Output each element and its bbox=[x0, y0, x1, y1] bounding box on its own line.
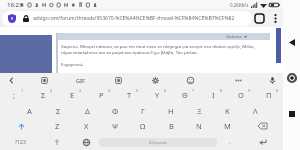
staticText: ?123 bbox=[15, 139, 26, 146]
button[interactable]: Ζ bbox=[43, 118, 72, 134]
button[interactable]: Κ bbox=[213, 103, 241, 118]
staticText: Ξ bbox=[197, 106, 202, 116]
staticText: Τ bbox=[127, 90, 132, 100]
button[interactable]: Ξ bbox=[185, 103, 213, 118]
staticText: Ι bbox=[212, 90, 215, 100]
button[interactable]: More options bbox=[268, 11, 283, 26]
staticText: Π bbox=[266, 90, 272, 100]
button[interactable]: Φ bbox=[101, 103, 129, 118]
button[interactable]: adslgr.com/forum/threads/953670-%CE%A4%C… bbox=[2, 11, 252, 26]
button[interactable]: Ρ bbox=[87, 87, 115, 103]
staticText: 7 bbox=[192, 88, 195, 93]
staticText: Ψ bbox=[112, 121, 119, 131]
staticText: 9 bbox=[248, 88, 251, 93]
button[interactable]: GIF bbox=[66, 73, 94, 87]
button[interactable]: Ε bbox=[58, 87, 87, 103]
staticText: 8 bbox=[220, 88, 223, 93]
button[interactable]: Θ bbox=[171, 87, 199, 103]
button[interactable]: Υ bbox=[143, 87, 171, 103]
button[interactable]: Shift bbox=[0, 118, 43, 134]
staticText: Ε bbox=[70, 90, 75, 100]
staticText: adslgr.com/forum/threads/953670-%CE%A4%C… bbox=[33, 15, 235, 22]
staticText: Options bbox=[226, 34, 242, 40]
staticText: Λ bbox=[253, 106, 258, 116]
staticText: 5 bbox=[136, 88, 139, 93]
button[interactable]: Enter bbox=[243, 134, 283, 150]
button[interactable]: Change language bbox=[73, 134, 99, 150]
button[interactable]: Μ bbox=[213, 118, 241, 134]
button[interactable]: Stickers bbox=[110, 73, 126, 87]
button[interactable]: Σ bbox=[29, 87, 58, 103]
button[interactable]: Ω bbox=[129, 118, 157, 134]
staticText: Ελληνικά bbox=[149, 140, 167, 146]
staticText: Δ bbox=[85, 106, 90, 116]
button[interactable]: Recent apps bbox=[284, 106, 300, 122]
staticText: 4 bbox=[108, 88, 111, 93]
button[interactable]: Α bbox=[15, 103, 44, 118]
button[interactable]: Ι bbox=[199, 87, 227, 103]
button[interactable]: Λ bbox=[241, 103, 269, 118]
staticText: 6 bbox=[164, 88, 167, 93]
staticText: Ω bbox=[140, 121, 146, 131]
staticText: Θ bbox=[182, 90, 188, 100]
staticText: Α bbox=[27, 106, 32, 116]
staticText: 0 bbox=[276, 88, 279, 93]
button[interactable]: Δ bbox=[73, 103, 101, 118]
staticText: 16:23 bbox=[7, 1, 23, 9]
button[interactable]: Voice input bbox=[264, 73, 280, 87]
staticText: 3 bbox=[79, 88, 82, 93]
button[interactable]: ; bbox=[0, 87, 29, 103]
staticText: ; bbox=[13, 90, 16, 100]
staticText: GIF bbox=[76, 77, 85, 84]
staticText: Χαιρετώ. Μπορεί κάποιος να μου πει ποιό … bbox=[61, 43, 266, 55]
staticText: Η bbox=[168, 106, 174, 116]
button[interactable]: Tabs bbox=[252, 11, 267, 26]
button[interactable]: Ελληνικά bbox=[99, 138, 217, 147]
staticText: 2 bbox=[50, 88, 53, 93]
staticText: Υ bbox=[155, 90, 160, 100]
staticText: Κ bbox=[225, 106, 230, 116]
staticText: Ρ bbox=[99, 90, 104, 100]
staticText: . bbox=[229, 138, 231, 146]
button[interactable]: More bbox=[230, 73, 246, 87]
button[interactable]: Emoji bbox=[182, 73, 198, 87]
button[interactable]: Home bbox=[284, 70, 300, 86]
button[interactable]: Clipboard bbox=[36, 73, 52, 87]
button[interactable]: Σ bbox=[44, 103, 73, 118]
button[interactable]: Options bbox=[226, 34, 247, 40]
staticText: Ο bbox=[238, 90, 244, 100]
staticText: Φ bbox=[112, 106, 119, 116]
button[interactable]: Backspace bbox=[241, 118, 283, 134]
staticText: Ευχαριστώ bbox=[61, 61, 83, 67]
staticText: Σ bbox=[56, 106, 61, 116]
staticText: 0.26Kb/s bbox=[230, 2, 249, 8]
staticText: Σ bbox=[41, 90, 46, 100]
button[interactable]: Τ bbox=[115, 87, 143, 103]
staticText: Μ bbox=[224, 121, 231, 131]
button[interactable]: Ο bbox=[227, 87, 255, 103]
button[interactable]: Ν bbox=[185, 118, 213, 134]
button[interactable]: Π bbox=[255, 87, 283, 103]
staticText: Χ bbox=[84, 121, 89, 131]
staticText: Ζ bbox=[55, 121, 60, 131]
staticText: Γ bbox=[141, 106, 145, 116]
staticText: Ν bbox=[196, 121, 202, 131]
staticText: Β bbox=[169, 121, 174, 131]
button[interactable]: Back bbox=[3, 73, 19, 87]
button[interactable]: Χ bbox=[72, 118, 101, 134]
button[interactable]: Ψ bbox=[101, 118, 129, 134]
staticText: 1 bbox=[21, 88, 24, 93]
button[interactable]: Β bbox=[157, 118, 185, 134]
button[interactable]: Settings bbox=[147, 73, 163, 87]
button[interactable]: ?123 bbox=[0, 134, 40, 150]
button[interactable]: Emoji bbox=[40, 134, 73, 150]
button[interactable]: Γ bbox=[129, 103, 157, 118]
button[interactable]: Back bbox=[284, 34, 300, 50]
button[interactable]: Η bbox=[157, 103, 185, 118]
